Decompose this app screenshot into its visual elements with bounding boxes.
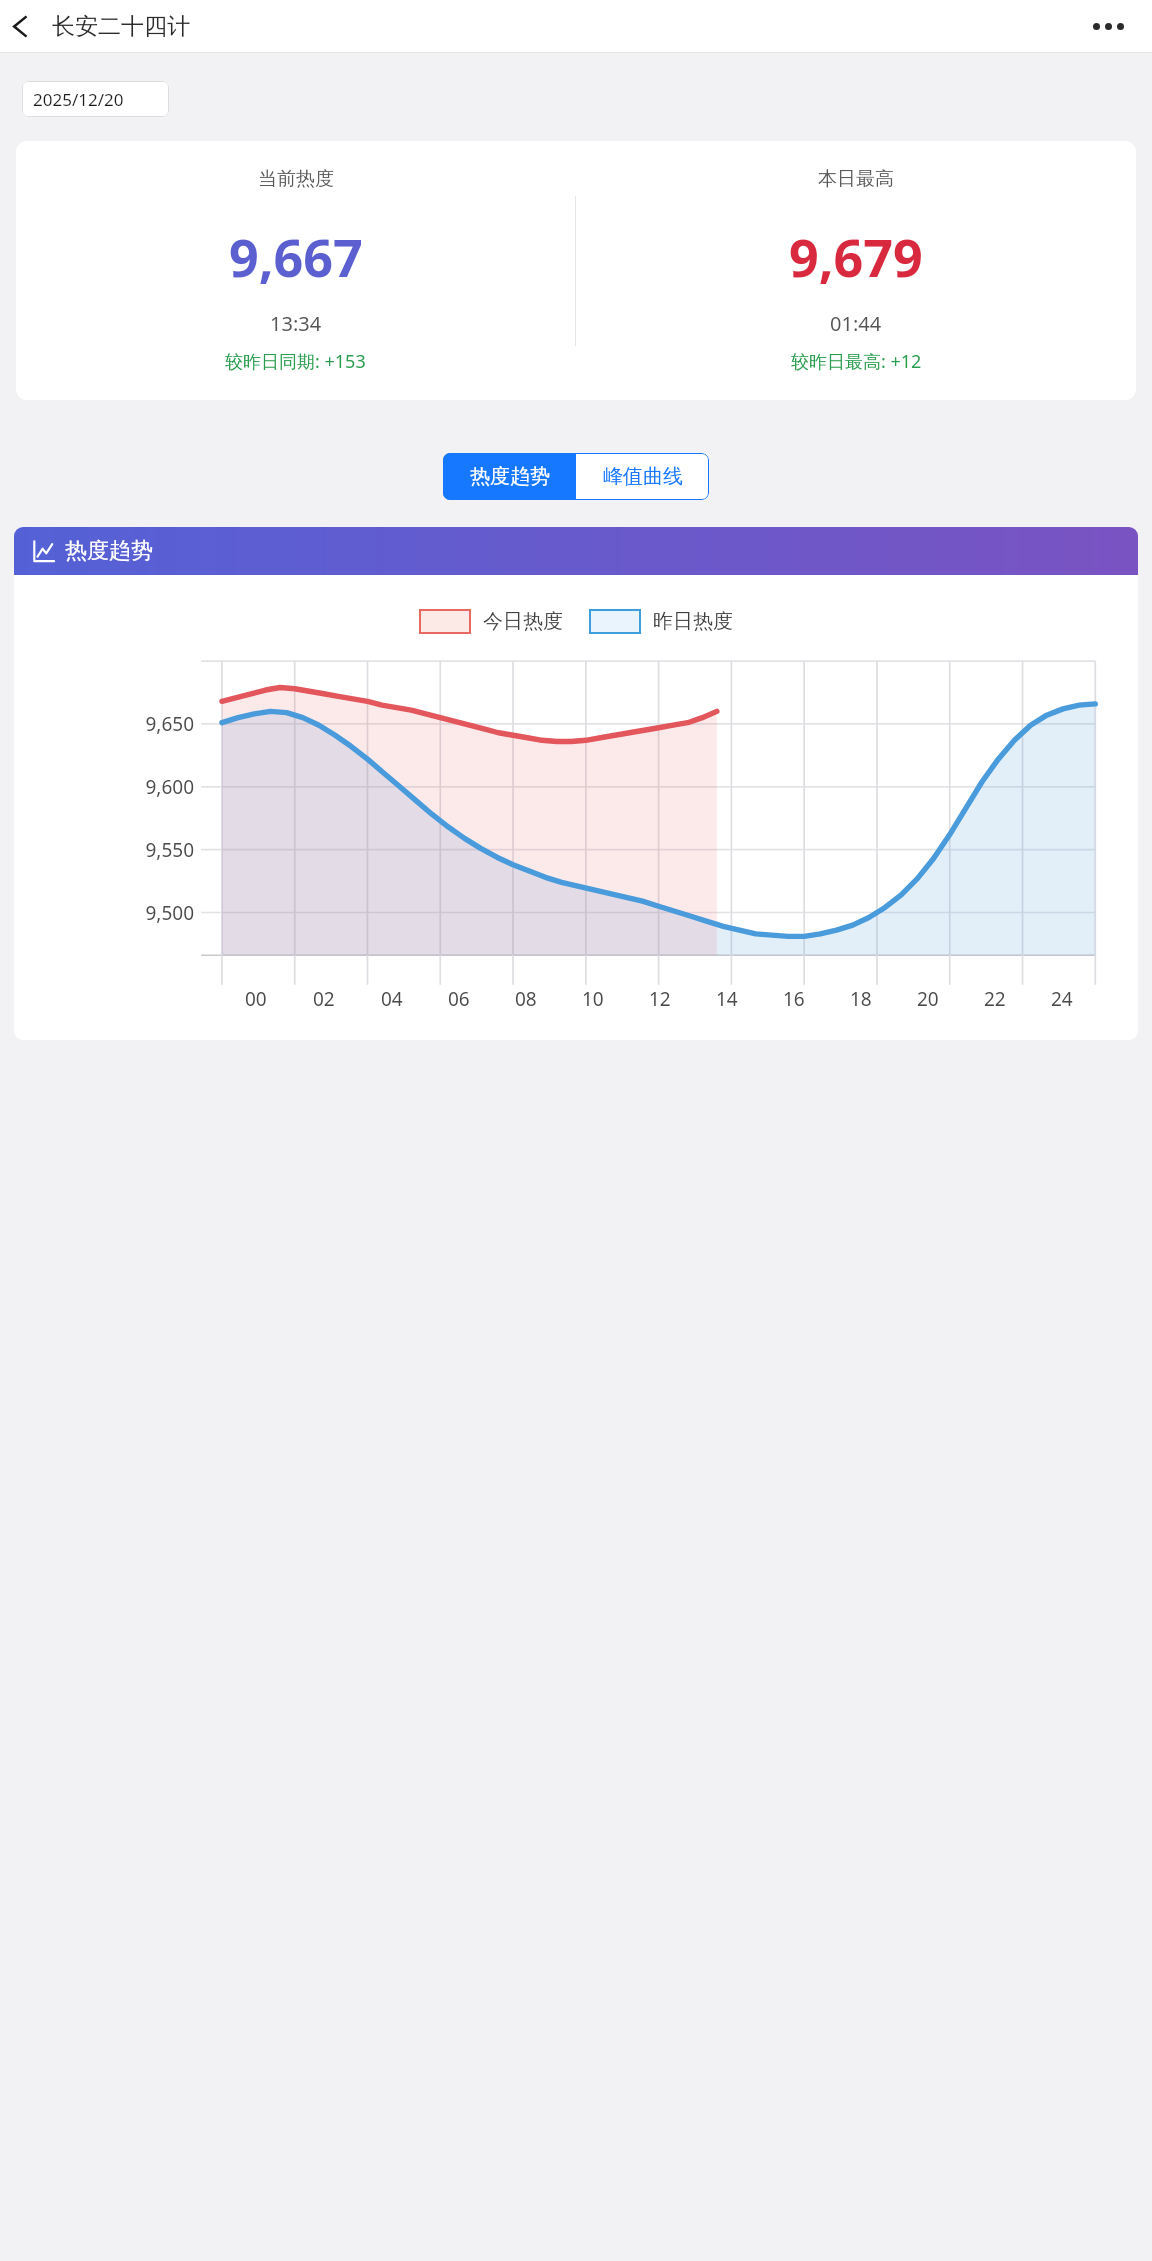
staticText: 00	[245, 986, 267, 1012]
staticText: 06	[448, 986, 470, 1012]
staticText: 9,650	[14, 711, 194, 737]
staticText: 02	[313, 986, 335, 1012]
staticText: 长安二十四计	[52, 12, 190, 41]
staticText: 本日最高	[818, 167, 894, 191]
staticText: 9,550	[14, 837, 194, 863]
staticText: 14	[716, 986, 738, 1012]
staticText: 10	[582, 986, 604, 1012]
button[interactable]: More options	[1086, 4, 1130, 48]
staticText: 12	[649, 986, 671, 1012]
button[interactable]: 2025/12/20	[22, 81, 169, 117]
staticText: 较昨日最高: +12	[791, 349, 922, 374]
staticText: 08	[515, 986, 537, 1012]
staticText: 22	[984, 986, 1006, 1012]
staticText: 较昨日同期: +153	[225, 349, 366, 374]
staticText: 热度趋势	[470, 464, 550, 489]
staticText: 9,679	[789, 221, 923, 292]
staticText: 峰值曲线	[603, 464, 683, 489]
staticText: 当前热度	[258, 167, 334, 191]
staticText: 今日热度	[483, 609, 563, 634]
button[interactable]: 峰值曲线	[576, 453, 709, 500]
staticText: 20	[917, 986, 939, 1012]
staticText: 16	[783, 986, 805, 1012]
staticText: 9,600	[14, 774, 194, 800]
staticText: 24	[1051, 986, 1073, 1012]
button[interactable]: Back	[0, 5, 42, 47]
staticText: 9,667	[229, 221, 363, 292]
staticText: 04	[381, 986, 403, 1012]
staticText: 2025/12/20	[33, 88, 124, 111]
staticText: 18	[850, 986, 872, 1012]
staticText: 昨日热度	[653, 609, 733, 634]
button[interactable]: 热度趋势	[443, 453, 576, 500]
staticText: 9,500	[14, 900, 194, 926]
staticText: 热度趋势	[65, 537, 153, 565]
staticText: 01:44	[830, 310, 882, 337]
staticText: 13:34	[270, 310, 322, 337]
